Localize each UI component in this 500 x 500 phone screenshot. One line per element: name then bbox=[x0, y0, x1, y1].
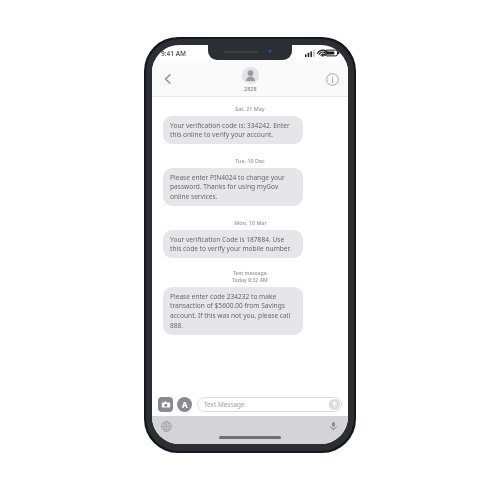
button[interactable]: Dictation bbox=[326, 419, 340, 433]
button[interactable]: Your verification Code is 187884. Use th… bbox=[163, 230, 303, 258]
staticText: Please enter PIN4024 to change your pass… bbox=[170, 173, 296, 201]
staticText: Sat, 21 May bbox=[235, 105, 265, 112]
staticText: Your verification code is: 334242. Enter… bbox=[170, 121, 296, 139]
button[interactable]: Back bbox=[156, 67, 180, 91]
staticText: Mon, 10 Mar bbox=[234, 219, 267, 226]
staticText: 9:41 AM bbox=[161, 49, 187, 58]
staticText: Tue, 10 Dec bbox=[235, 157, 265, 164]
staticText: Please enter code 234232 to make transac… bbox=[170, 292, 296, 330]
staticText: Today 9:32 AM bbox=[232, 276, 268, 283]
button[interactable]: 2828 bbox=[242, 67, 259, 92]
button[interactable]: Change keyboard bbox=[159, 419, 173, 433]
staticText: Text message bbox=[233, 269, 267, 276]
button[interactable]: Text Message bbox=[197, 397, 342, 412]
staticText: A bbox=[182, 399, 188, 410]
button[interactable]: Please enter code 234232 to make transac… bbox=[163, 287, 303, 335]
button[interactable]: Camera bbox=[158, 397, 173, 412]
staticText: Text Message bbox=[204, 400, 245, 409]
button[interactable]: Send bbox=[329, 399, 340, 410]
staticText: Your verification Code is 187884. Use th… bbox=[170, 235, 296, 253]
button[interactable]: Details bbox=[321, 68, 343, 90]
button[interactable]: Please enter PIN4024 to change your pass… bbox=[163, 168, 303, 206]
button[interactable]: Your verification code is: 334242. Enter… bbox=[163, 116, 303, 144]
staticText: 2828 bbox=[244, 85, 257, 92]
button[interactable]: App Store bbox=[177, 397, 192, 412]
